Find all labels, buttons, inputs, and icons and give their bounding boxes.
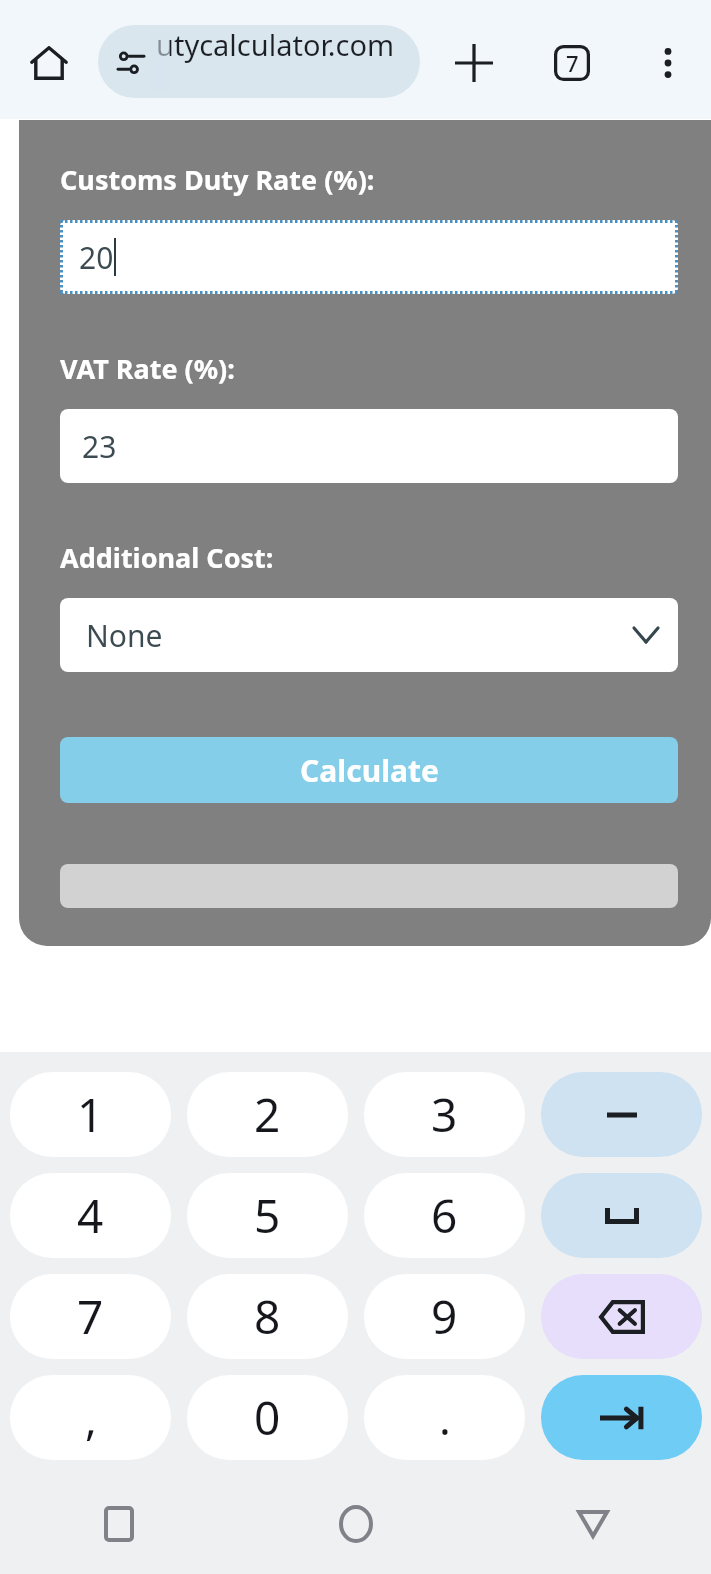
staticText: 1 (77, 1083, 104, 1146)
button[interactable]: 23 (60, 409, 678, 483)
staticText: 0 (254, 1386, 281, 1449)
button[interactable]: Back (474, 1474, 711, 1574)
staticText: 2 (254, 1083, 281, 1146)
button[interactable]: Calculate (60, 737, 678, 803)
staticText: 3 (431, 1083, 458, 1146)
button[interactable]: 4 (10, 1173, 171, 1258)
button[interactable]: , (10, 1375, 171, 1460)
staticText: utycalculator.com (156, 25, 395, 98)
button[interactable]: Home (18, 32, 80, 94)
staticText: , (85, 1388, 97, 1448)
button[interactable]: 7 (10, 1274, 171, 1359)
staticText: 9 (431, 1285, 458, 1348)
button[interactable]: Next field (541, 1375, 702, 1460)
staticText: 4 (77, 1184, 104, 1247)
button[interactable]: utycalculator.com (98, 25, 420, 98)
staticText: Customs Duty Rate (%): (60, 161, 375, 198)
button[interactable]: Home (237, 1474, 474, 1574)
button[interactable]: None (60, 598, 678, 672)
button[interactable]: 1 (10, 1072, 171, 1157)
button[interactable]: Recent apps (0, 1474, 237, 1574)
staticText: Calculate (300, 750, 439, 791)
button[interactable]: Backspace (541, 1274, 702, 1359)
staticText: VAT Rate (%): (60, 350, 235, 387)
button[interactable]: 8 (187, 1274, 348, 1359)
staticText: 7 (566, 48, 579, 78)
button[interactable]: . (364, 1375, 525, 1460)
button[interactable]: More options (637, 32, 699, 94)
button[interactable]: 5 (187, 1173, 348, 1258)
button[interactable]: 0 (187, 1375, 348, 1460)
button[interactable]: 9 (364, 1274, 525, 1359)
staticText: 23 (82, 426, 117, 467)
staticText: 7 (77, 1285, 104, 1348)
button[interactable]: Minus (541, 1072, 702, 1157)
button[interactable]: 2 (187, 1072, 348, 1157)
button[interactable]: 6 (364, 1173, 525, 1258)
button[interactable]: 3 (364, 1072, 525, 1157)
button[interactable]: 20 (60, 220, 678, 294)
staticText: None (86, 615, 163, 656)
button[interactable]: Space (541, 1173, 702, 1258)
staticText: Additional Cost: (60, 539, 274, 576)
staticText: 20 (79, 237, 114, 278)
staticText: 5 (254, 1184, 281, 1247)
button[interactable]: New tab (443, 32, 505, 94)
staticText: . (439, 1388, 451, 1448)
staticText: 6 (431, 1184, 458, 1247)
staticText: 8 (254, 1285, 281, 1348)
button[interactable]: Switch tabs, 7 open (541, 32, 603, 94)
